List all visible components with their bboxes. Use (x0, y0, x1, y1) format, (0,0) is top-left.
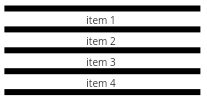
button[interactable]: item 1 (0, 12, 207, 27)
button[interactable]: item 3 (0, 54, 207, 69)
button[interactable]: item 4 (0, 75, 207, 90)
button[interactable]: item 2 (0, 33, 207, 48)
staticText: item 1 (86, 13, 116, 27)
staticText: item 2 (86, 34, 116, 48)
staticText: item 3 (86, 55, 116, 69)
staticText: item 4 (86, 76, 116, 90)
